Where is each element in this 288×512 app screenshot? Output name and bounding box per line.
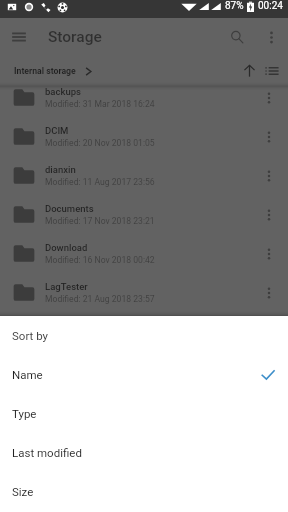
button[interactable]: Download	[0, 234, 288, 273]
button[interactable]: More options	[249, 84, 288, 117]
staticText: Modified: 17 Nov 2018 23:21	[45, 216, 155, 226]
button[interactable]: Open navigation drawer	[0, 18, 38, 56]
staticText: Storage	[48, 28, 102, 46]
button[interactable]: Last modified	[0, 433, 288, 472]
button[interactable]: Movies	[0, 312, 288, 351]
staticText: Last modified	[12, 446, 82, 459]
button[interactable]: DCIM	[0, 117, 288, 156]
staticText: 00:24	[258, 0, 283, 12]
staticText: Modified: 11 Aug 2017 23:56	[45, 177, 155, 187]
staticText: dianxin	[45, 164, 76, 175]
button[interactable]: LagTester	[0, 273, 288, 312]
staticText: Internal storage	[14, 66, 76, 76]
button[interactable]: backups	[0, 84, 288, 117]
staticText: Modified: 31 Mar 2018 16:24	[45, 99, 155, 109]
button[interactable]: Search	[219, 18, 255, 56]
button[interactable]: More options	[249, 234, 288, 273]
button[interactable]: More options	[249, 273, 288, 312]
staticText: Modified: 16 Nov 2018 00:42	[45, 255, 155, 265]
staticText: DCIM	[45, 125, 69, 136]
button[interactable]: Go up	[236, 56, 262, 84]
staticText: Download	[45, 242, 88, 253]
staticText: LagTester	[45, 281, 88, 292]
staticText: Type	[12, 407, 37, 420]
button[interactable]: More options	[249, 117, 288, 156]
staticText: Modified: 20 Nov 2018 01:05	[45, 138, 155, 148]
button[interactable]: dianxin	[0, 156, 288, 195]
staticText: Sort by	[12, 329, 49, 342]
button[interactable]: Internal storage	[14, 65, 92, 75]
button[interactable]: Documents	[0, 195, 288, 234]
button[interactable]: Type	[0, 394, 288, 433]
staticText: Modified: 11 Aug 2017 23:56	[45, 333, 155, 343]
staticText: Modified: 21 Aug 2018 23:57	[45, 294, 155, 304]
staticText: 87%	[225, 0, 244, 12]
button[interactable]: Change view	[259, 56, 285, 84]
staticText: backups	[45, 86, 81, 97]
button[interactable]: More options	[249, 195, 288, 234]
staticText: Name	[12, 368, 43, 381]
button[interactable]: More options	[249, 156, 288, 195]
button[interactable]: More options	[255, 18, 288, 56]
staticText: Documents	[45, 203, 94, 214]
button[interactable]: Size	[0, 472, 288, 511]
button[interactable]: More options	[249, 312, 288, 351]
staticText: Size	[12, 485, 34, 498]
button[interactable]: Name	[0, 355, 288, 394]
